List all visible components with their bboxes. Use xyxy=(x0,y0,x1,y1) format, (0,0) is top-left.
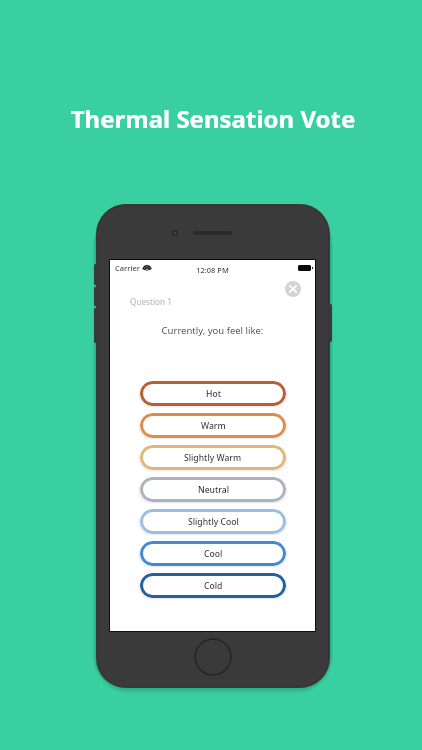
staticText: Slightly Warm xyxy=(184,452,242,464)
staticText: Slightly Cool xyxy=(188,516,239,528)
button[interactable]: Close xyxy=(285,281,301,297)
staticText: Question 1 xyxy=(130,296,172,307)
staticText: 12:08 PM xyxy=(110,265,315,275)
button[interactable]: Slightly Cool xyxy=(140,509,286,534)
button[interactable]: Neutral xyxy=(140,477,286,502)
staticText: Cool xyxy=(204,548,223,560)
staticText: Cold xyxy=(204,580,223,592)
button[interactable]: Cool xyxy=(140,541,286,566)
button[interactable]: Hot xyxy=(140,381,286,406)
staticText: Neutral xyxy=(198,484,229,496)
staticText: Carrier xyxy=(115,263,140,273)
staticText: Thermal Sensation Vote xyxy=(2,102,422,135)
staticText: Currently, you feel like: xyxy=(110,324,315,337)
staticText: Hot xyxy=(206,388,221,400)
staticText: Warm xyxy=(201,420,226,432)
button[interactable]: Cold xyxy=(140,573,286,598)
button[interactable]: Slightly Warm xyxy=(140,445,286,470)
button[interactable]: Warm xyxy=(140,413,286,438)
